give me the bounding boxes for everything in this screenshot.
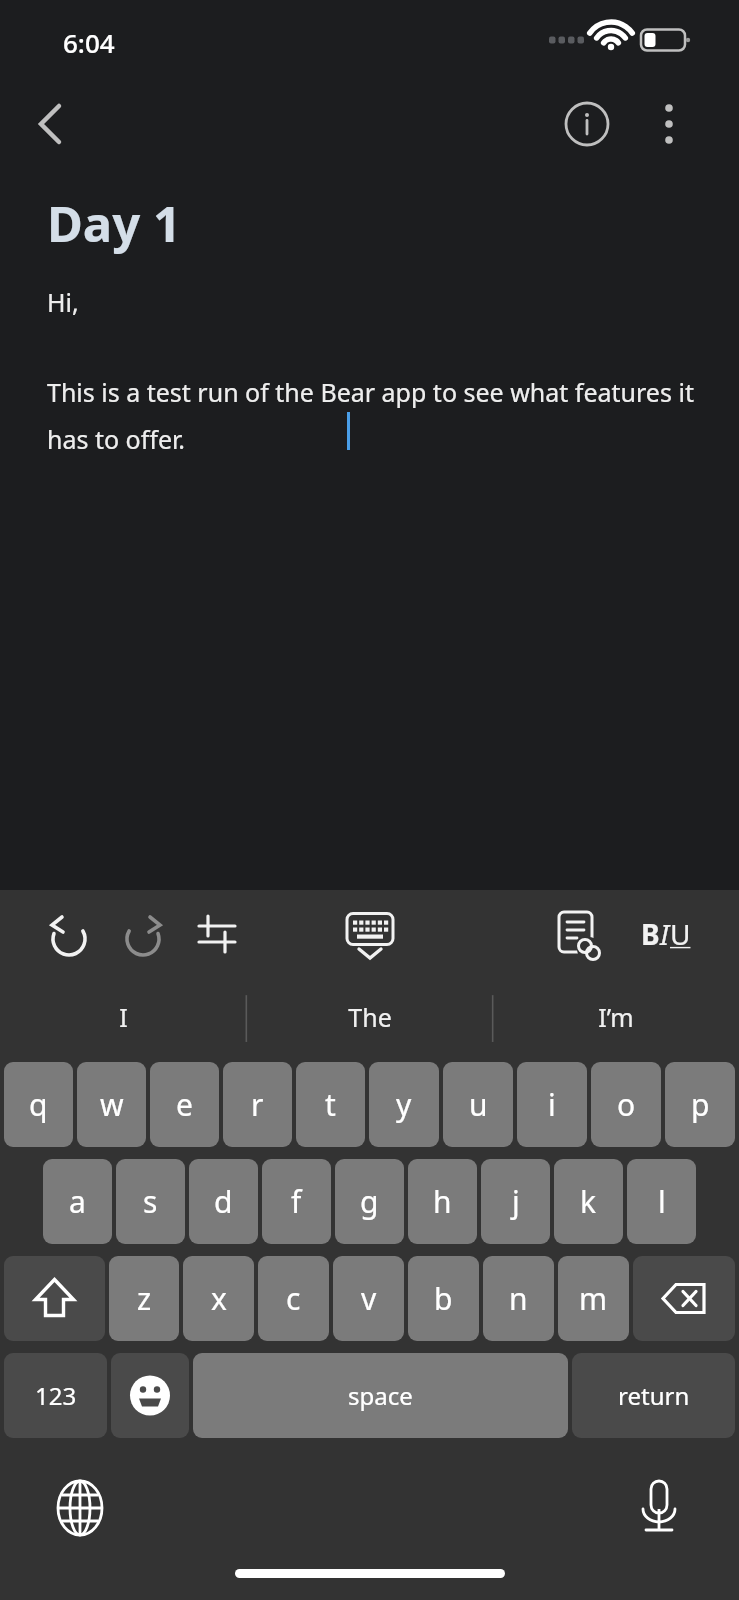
button[interactable]: t [296, 1062, 365, 1147]
staticText: h [433, 1181, 452, 1222]
button[interactable]: Voice input [627, 1476, 691, 1540]
staticText: w [100, 1084, 124, 1125]
button[interactable]: The [247, 978, 493, 1056]
button[interactable]: l [627, 1159, 696, 1244]
button[interactable]: B [627, 904, 705, 964]
button[interactable]: More options [641, 96, 697, 152]
button[interactable]: k [554, 1159, 623, 1244]
staticText: 123 [35, 1379, 77, 1412]
staticText: c [286, 1278, 301, 1319]
staticText: This is a test run of the Bear app to se… [47, 375, 699, 456]
button[interactable]: Change language [48, 1476, 112, 1540]
button[interactable]: g [335, 1159, 404, 1244]
button[interactable]: Info [557, 94, 617, 154]
button[interactable]: space [193, 1353, 568, 1438]
staticText: u [469, 1084, 488, 1125]
staticText: x [211, 1278, 227, 1319]
staticText: e [176, 1084, 193, 1125]
staticText: k [580, 1181, 597, 1222]
button[interactable]: e [150, 1062, 219, 1147]
button[interactable]: u [443, 1062, 513, 1147]
staticText: p [691, 1084, 710, 1125]
button[interactable]: h [408, 1159, 477, 1244]
staticText: a [69, 1181, 86, 1222]
button[interactable]: m [558, 1256, 629, 1341]
staticText: I [119, 1000, 128, 1034]
staticText: t [325, 1084, 336, 1125]
staticText: I [660, 915, 670, 953]
button[interactable]: Undo [38, 903, 100, 965]
button[interactable]: return [572, 1353, 735, 1438]
staticText: f [291, 1181, 302, 1222]
staticText: g [360, 1181, 379, 1222]
staticText: b [434, 1278, 453, 1319]
staticText: l [658, 1181, 666, 1222]
button[interactable]: n [483, 1256, 554, 1341]
staticText: Day 1 [47, 190, 181, 257]
button[interactable]: v [333, 1256, 404, 1341]
staticText: The [348, 1000, 392, 1034]
staticText: return [618, 1379, 690, 1412]
staticText: space [348, 1379, 413, 1412]
staticText: v [361, 1278, 377, 1319]
staticText: q [29, 1084, 48, 1125]
staticText: 6:04 [63, 25, 115, 60]
button[interactable]: w [77, 1062, 146, 1147]
button[interactable]: Shift [4, 1256, 105, 1341]
staticText: z [137, 1278, 152, 1319]
staticText: s [143, 1181, 158, 1222]
button[interactable]: Back [20, 94, 80, 154]
button[interactable]: y [369, 1062, 439, 1147]
button[interactable]: f [262, 1159, 331, 1244]
button[interactable]: o [591, 1062, 661, 1147]
button[interactable]: x [183, 1256, 254, 1341]
staticText: m [579, 1278, 608, 1319]
button[interactable]: b [408, 1256, 479, 1341]
button[interactable]: Formatting [186, 903, 248, 965]
staticText: n [509, 1278, 528, 1319]
button[interactable]: 123 [4, 1353, 107, 1438]
staticText: r [251, 1084, 264, 1125]
staticText: j [512, 1181, 520, 1222]
button[interactable]: Redo [112, 903, 174, 965]
staticText: o [617, 1084, 636, 1125]
button[interactable]: i [517, 1062, 587, 1147]
staticText: U [670, 915, 691, 953]
staticText: y [396, 1084, 412, 1125]
button[interactable]: Emoji [111, 1353, 189, 1438]
button[interactable]: a [43, 1159, 112, 1244]
staticText: i [548, 1084, 556, 1125]
staticText: I’m [598, 1000, 634, 1034]
button[interactable]: r [223, 1062, 292, 1147]
button[interactable]: I’m [493, 978, 739, 1056]
staticText: Hi, [47, 285, 79, 319]
button[interactable]: z [109, 1256, 179, 1341]
button[interactable]: Hide keyboard [339, 903, 401, 965]
button[interactable]: Link note [545, 903, 607, 965]
button[interactable]: p [665, 1062, 735, 1147]
button[interactable]: Backspace [633, 1256, 735, 1341]
button[interactable]: I [0, 978, 247, 1056]
button[interactable]: s [116, 1159, 185, 1244]
button[interactable]: q [4, 1062, 73, 1147]
staticText: B [641, 915, 660, 953]
button[interactable]: j [481, 1159, 550, 1244]
button[interactable]: c [258, 1256, 329, 1341]
button[interactable]: d [189, 1159, 258, 1244]
staticText: d [214, 1181, 233, 1222]
